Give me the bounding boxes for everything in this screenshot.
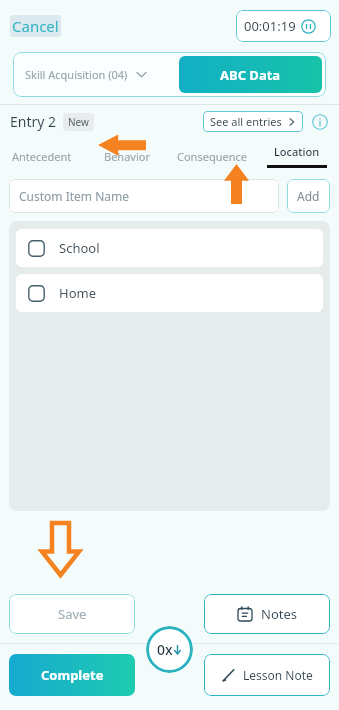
staticText: Behavior: [104, 149, 150, 164]
staticText: 0x: [157, 640, 173, 659]
button[interactable]: Complete: [9, 654, 135, 696]
button[interactable]: Custom Item Name: [9, 179, 279, 213]
button[interactable]: Antecedent: [0, 138, 84, 174]
button[interactable]: Add: [287, 179, 330, 213]
button[interactable]: Save: [9, 594, 135, 634]
staticText: ABC Data: [220, 66, 281, 84]
staticText: Notes: [261, 605, 297, 623]
staticText: Complete: [41, 666, 104, 684]
staticText: Home: [59, 284, 96, 302]
button[interactable]: Home: [16, 274, 323, 312]
staticText: Antecedent: [12, 149, 72, 164]
button[interactable]: Information: [311, 113, 329, 131]
staticText: Custom Item Name: [19, 188, 130, 204]
button[interactable]: 00:01:19: [236, 10, 331, 42]
staticText: See all entries: [210, 114, 282, 129]
staticText: Add: [297, 188, 320, 204]
staticText: Entry 2: [10, 112, 57, 131]
staticText: Location: [274, 144, 320, 159]
staticText: Save: [58, 605, 87, 623]
staticText: Lesson Note: [243, 667, 313, 683]
button[interactable]: Location: [254, 138, 339, 174]
button[interactable]: School: [16, 229, 323, 267]
staticText: Consequence: [177, 149, 247, 164]
button[interactable]: ABC Data: [179, 56, 322, 93]
button[interactable]: Skill Acquisition (04): [13, 52, 175, 97]
button[interactable]: Consequence: [169, 138, 254, 174]
button[interactable]: Notes: [204, 594, 330, 634]
staticText: Cancel: [12, 16, 59, 36]
staticText: 00:01:19: [244, 17, 296, 35]
staticText: School: [59, 239, 100, 257]
button[interactable]: Behavior: [84, 138, 169, 174]
button[interactable]: Trial count: [146, 626, 193, 673]
button[interactable]: Lesson Note: [204, 654, 330, 696]
staticText: New: [68, 115, 89, 129]
button[interactable]: Cancel: [10, 15, 61, 37]
staticText: Skill Acquisition (04): [25, 67, 128, 82]
button[interactable]: See all entries: [203, 111, 303, 132]
